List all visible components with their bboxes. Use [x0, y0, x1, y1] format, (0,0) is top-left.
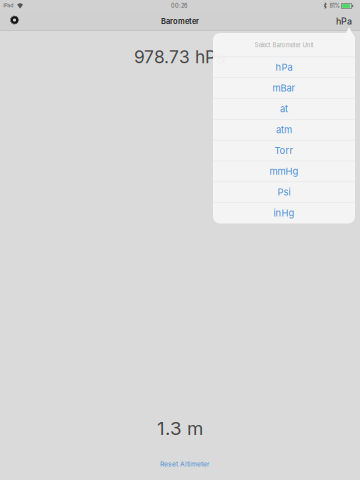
staticText: Select Barometer Unit — [254, 41, 313, 49]
button[interactable]: Psi — [213, 182, 355, 202]
staticText: Psi — [277, 187, 290, 198]
staticText: mmHg — [269, 166, 298, 177]
staticText: Reset Altimeter — [160, 460, 210, 468]
button[interactable]: mmHg — [213, 161, 355, 181]
staticText: 1.3 m — [157, 417, 203, 439]
staticText: 81% — [329, 2, 339, 9]
staticText: hPa — [275, 62, 292, 73]
button[interactable]: mBar — [213, 78, 355, 98]
staticText: atm — [276, 124, 292, 135]
staticText: at — [280, 103, 288, 115]
button[interactable]: inHg — [213, 203, 355, 223]
button[interactable]: Torr — [213, 140, 355, 161]
staticText: inHg — [273, 207, 294, 219]
button[interactable]: Settings — [8, 12, 30, 30]
staticText: Torr — [274, 145, 293, 156]
button[interactable]: hPa — [322, 12, 352, 30]
staticText: 00:26 — [171, 2, 187, 9]
staticText: mBar — [272, 82, 295, 94]
staticText: Barometer — [161, 17, 199, 26]
staticText: 978.73 hPa — [134, 46, 226, 67]
staticText: iPad — [3, 2, 13, 9]
button[interactable]: atm — [213, 120, 355, 140]
button[interactable]: at — [213, 99, 355, 119]
button[interactable]: hPa — [213, 57, 355, 77]
button[interactable]: Reset Altimeter — [0, 460, 360, 468]
staticText: hPa — [336, 16, 352, 27]
